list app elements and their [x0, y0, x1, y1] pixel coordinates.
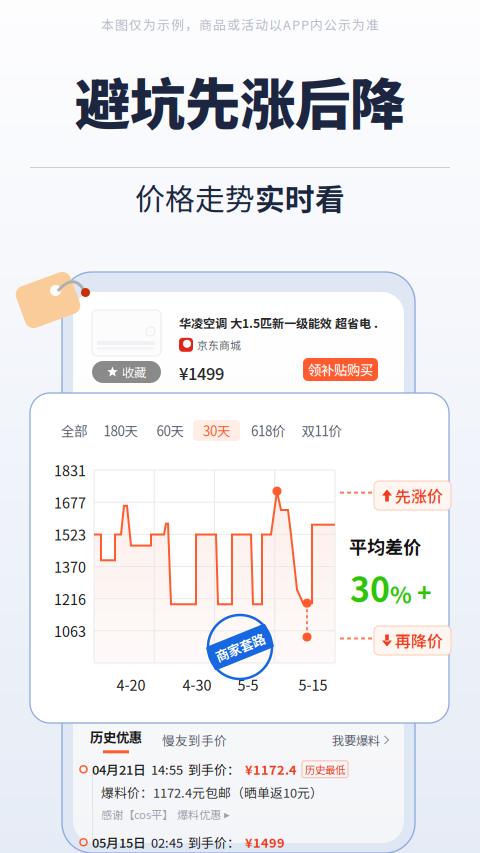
button[interactable]: 领补贴购买: [303, 358, 378, 381]
button[interactable]: 30天: [193, 420, 240, 441]
staticText: 价格走势: [135, 176, 255, 219]
staticText: 1216: [54, 588, 86, 609]
staticText: 到手价：: [188, 760, 240, 779]
staticText: 我要爆料: [332, 731, 380, 749]
staticText: 爆料优惠 ▸: [177, 806, 230, 822]
staticText: +: [417, 573, 432, 609]
button[interactable]: 双11价: [297, 420, 346, 441]
staticText: 慢友到手价: [162, 731, 227, 749]
staticText: 1063: [54, 620, 86, 641]
button[interactable]: 慢友到手价: [162, 731, 227, 749]
staticText: ¥1499: [245, 833, 285, 852]
staticText: 本图仅为示例，商品或活动以APP内公示为准: [101, 15, 379, 34]
staticText: 04月21日: [92, 760, 146, 779]
staticText: 收藏: [122, 363, 146, 381]
staticText: %: [390, 577, 412, 610]
staticText: 历史优惠: [90, 727, 142, 746]
staticText: 华凌空调 大1.5匹新一级能效 超省电 .: [179, 314, 378, 331]
staticText: 1370: [54, 556, 86, 577]
staticText: 5-5: [237, 674, 258, 695]
staticText: 5-15: [298, 674, 327, 695]
staticText: 到手价：: [188, 833, 240, 852]
staticText: 先涨价: [395, 484, 443, 507]
staticText: 商家套路: [214, 637, 266, 657]
staticText: 实时看: [255, 176, 345, 219]
staticText: 双11价: [301, 421, 341, 440]
button[interactable]: 全部: [56, 420, 92, 441]
staticText: 感谢【cos平】: [101, 806, 173, 822]
staticText: 平均差价: [349, 533, 421, 559]
staticText: 14:55: [151, 760, 183, 779]
staticText: 1831: [54, 460, 86, 480]
staticText: 60天: [156, 421, 183, 440]
button[interactable]: 我要爆料: [332, 731, 389, 749]
staticText: 全部: [61, 421, 87, 440]
staticText: 618价: [251, 421, 285, 440]
staticText: ¥1499: [179, 361, 224, 385]
staticText: 05月15日: [92, 833, 146, 852]
button[interactable]: 618价: [246, 420, 290, 441]
staticText: 30天: [203, 421, 230, 440]
staticText: 再降价: [395, 629, 443, 652]
staticText: 30: [350, 563, 390, 612]
staticText: ¥1172.4: [245, 760, 297, 779]
button[interactable]: 收藏: [92, 361, 161, 383]
button[interactable]: 60天: [151, 420, 189, 441]
staticText: 4-30: [182, 674, 211, 695]
button[interactable]: 历史优惠: [90, 727, 142, 753]
staticText: 02:45: [151, 833, 183, 852]
staticText: 避坑先涨后降: [75, 61, 405, 141]
staticText: 领补贴购买: [308, 360, 373, 379]
staticText: 京东商城: [197, 337, 241, 353]
staticText: 历史最低: [305, 762, 345, 777]
button[interactable]: 180天: [97, 420, 144, 441]
staticText: 1523: [54, 524, 86, 545]
staticText: 爆料价：1172.4元包邮（晒单返10元）: [101, 783, 323, 802]
staticText: 4-20: [116, 674, 145, 695]
staticText: 180天: [103, 421, 137, 440]
staticText: 1677: [54, 492, 86, 513]
